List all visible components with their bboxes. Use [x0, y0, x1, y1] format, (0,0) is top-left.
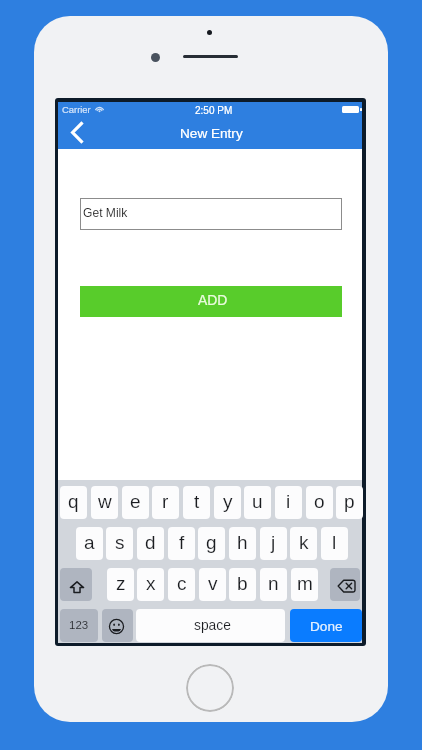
staticText: o — [314, 491, 325, 512]
staticText: l — [332, 532, 337, 553]
staticText: space — [194, 618, 231, 633]
staticText: r — [162, 491, 169, 512]
staticText: h — [237, 532, 248, 553]
staticText: 123 — [69, 619, 89, 632]
staticText: y — [223, 491, 233, 512]
staticText: Done — [310, 619, 343, 634]
staticText: Get Milk — [83, 206, 128, 220]
staticText: i — [286, 491, 291, 512]
staticText: k — [299, 532, 309, 553]
button[interactable]: d — [137, 527, 164, 560]
button[interactable]: y — [214, 486, 241, 519]
staticText: n — [268, 573, 279, 594]
button[interactable]: Shift — [60, 568, 92, 601]
staticText: d — [145, 532, 156, 553]
button[interactable]: a — [76, 527, 103, 560]
staticText: a — [84, 532, 95, 553]
staticText: s — [115, 532, 125, 553]
button[interactable]: t — [183, 486, 210, 519]
staticText: Carrier — [62, 104, 91, 115]
button[interactable]: q — [60, 486, 87, 519]
button[interactable]: b — [229, 568, 256, 601]
staticText: x — [146, 573, 156, 594]
staticText: m — [297, 573, 313, 594]
button[interactable]: l — [321, 527, 348, 560]
staticText: g — [206, 532, 217, 553]
button[interactable]: e — [122, 486, 149, 519]
button[interactable]: s — [106, 527, 133, 560]
button[interactable]: Done — [290, 609, 362, 642]
staticText: b — [237, 573, 248, 594]
staticText: z — [116, 573, 126, 594]
staticText: u — [252, 491, 263, 512]
button[interactable]: p — [336, 486, 363, 519]
staticText: New Entry — [180, 126, 243, 141]
button[interactable]: c — [168, 568, 195, 601]
button[interactable]: Get Milk — [80, 198, 342, 230]
staticText: w — [98, 491, 112, 512]
button[interactable]: r — [152, 486, 179, 519]
staticText: t — [194, 491, 200, 512]
button[interactable]: g — [198, 527, 225, 560]
button[interactable]: Emoji keyboard — [102, 609, 133, 642]
staticText: c — [177, 573, 187, 594]
button[interactable]: j — [260, 527, 287, 560]
button[interactable]: z — [107, 568, 134, 601]
staticText: q — [68, 491, 79, 512]
button[interactable]: w — [91, 486, 118, 519]
button[interactable]: Backspace — [330, 568, 360, 601]
staticText: e — [130, 491, 141, 512]
button[interactable]: Back — [64, 119, 90, 145]
staticText: 2:50 PM — [195, 105, 233, 116]
button[interactable]: i — [275, 486, 302, 519]
button[interactable]: 123 — [60, 609, 98, 642]
staticText: j — [271, 532, 276, 553]
button[interactable]: v — [199, 568, 226, 601]
button[interactable]: h — [229, 527, 256, 560]
button[interactable]: k — [290, 527, 317, 560]
button[interactable]: u — [244, 486, 271, 519]
button[interactable]: space — [136, 609, 285, 642]
staticText: v — [208, 573, 218, 594]
button[interactable]: ADD — [80, 286, 342, 317]
staticText: f — [179, 532, 185, 553]
button[interactable]: m — [291, 568, 318, 601]
staticText: p — [344, 491, 355, 512]
button[interactable]: n — [260, 568, 287, 601]
staticText: ADD — [198, 292, 228, 308]
button[interactable]: o — [306, 486, 333, 519]
button[interactable]: x — [137, 568, 164, 601]
button[interactable]: f — [168, 527, 195, 560]
